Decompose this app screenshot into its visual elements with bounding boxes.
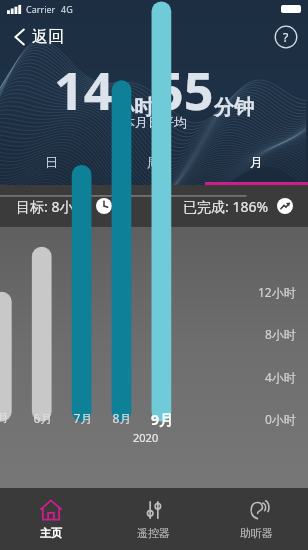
staticText: 4小时	[265, 369, 296, 385]
button[interactable]: 日	[0, 145, 102, 185]
staticText: 助听器	[240, 526, 273, 540]
staticText: 55	[154, 54, 214, 125]
other: Goal	[96, 198, 112, 214]
staticText: 主页	[40, 526, 62, 540]
staticText: 返回	[32, 27, 64, 47]
staticText: 6月	[32, 410, 54, 426]
button[interactable]: 主页	[0, 488, 102, 550]
staticText: 14	[54, 54, 114, 125]
staticText: 本月日平均	[122, 114, 187, 130]
staticText: 目标: 8小时	[16, 197, 88, 216]
staticText: 4G	[61, 3, 73, 15]
button[interactable]: 周	[102, 145, 205, 185]
staticText: 2020	[133, 430, 159, 445]
staticText: 月	[0, 410, 14, 425]
staticText: 已完成: 186%	[183, 197, 269, 216]
staticText: ?	[283, 29, 289, 45]
staticText: 0小时	[265, 411, 296, 427]
button[interactable]: 返回	[10, 23, 68, 51]
staticText: 12小时	[258, 284, 296, 300]
staticText: Carrier	[26, 3, 56, 15]
staticText: 9月	[151, 410, 173, 429]
staticText: 8月	[111, 410, 133, 426]
button[interactable]: 月	[205, 145, 308, 185]
staticText: 7月	[72, 410, 94, 426]
staticText: 遥控器	[137, 526, 170, 540]
staticText: 8小时	[265, 326, 296, 342]
button[interactable]: 目标: 8小时	[0, 185, 154, 227]
staticText: 月	[250, 154, 263, 170]
button[interactable]: 已完成: 186%	[154, 185, 308, 227]
staticText: 周	[147, 154, 160, 170]
button[interactable]: Help	[274, 25, 298, 49]
staticText: 小时	[114, 95, 154, 120]
staticText: 日	[45, 154, 58, 170]
button[interactable]: 遥控器	[102, 488, 205, 550]
button[interactable]: 助听器	[205, 488, 308, 550]
staticText: 分钟	[214, 95, 254, 120]
other: Progress	[277, 198, 293, 214]
